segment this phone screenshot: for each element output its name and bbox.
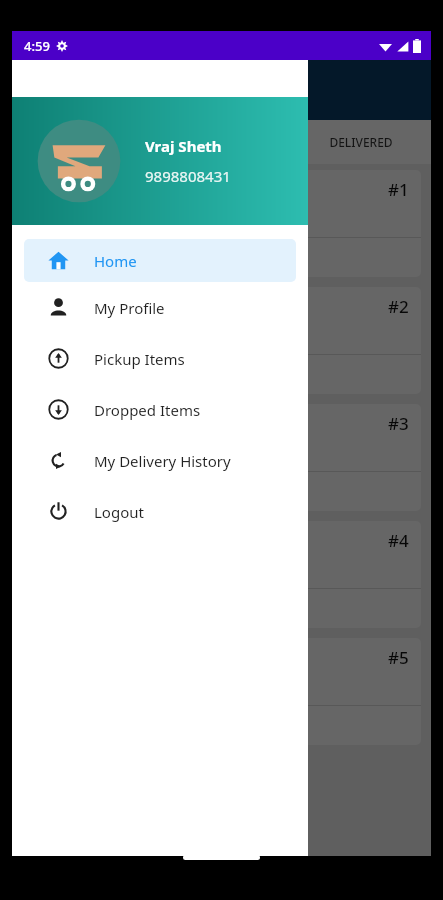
staticText: Vraj Sheth [145, 136, 222, 156]
staticText: Call Customer [34, 365, 128, 384]
button[interactable]: DELIVERED [291, 120, 431, 164]
button[interactable]: My Delivery History [12, 435, 308, 486]
staticText: Logout [94, 502, 144, 522]
button[interactable]: Logout [12, 486, 308, 537]
button[interactable]: PICKED [151, 120, 291, 164]
staticText: 4:59 [24, 37, 50, 55]
staticText: My Profile [94, 298, 165, 318]
button[interactable]: Order [22, 521, 421, 628]
staticText: #1 [388, 178, 409, 201]
staticText: Orders [70, 77, 133, 103]
button[interactable]: Order [22, 170, 421, 277]
button[interactable]: PENDING [12, 120, 151, 164]
staticText: #2 [388, 295, 409, 318]
staticText: Order [34, 295, 70, 313]
staticText: DELIVERED [329, 134, 393, 150]
button[interactable]: Home [24, 239, 296, 282]
staticText: #5 [388, 646, 409, 669]
button[interactable]: Open navigation menu [12, 60, 431, 120]
staticText: Dropped Items [94, 400, 201, 420]
staticText: 9898808431 [145, 166, 231, 186]
staticText: Order [34, 178, 70, 196]
staticText: Home [94, 251, 137, 271]
staticText: Order [34, 412, 70, 430]
button[interactable]: Vraj Sheth [12, 97, 308, 225]
button[interactable]: My Profile [12, 282, 308, 333]
staticText: My Delivery History [94, 451, 231, 471]
button[interactable]: Order [22, 287, 421, 394]
staticText: Pickup Items [94, 349, 185, 369]
button[interactable]: Order [22, 638, 421, 745]
staticText: Call Customer [34, 248, 128, 267]
staticText: 12, Raj Path, Gotri Rasta [34, 209, 181, 227]
button[interactable]: Dropped Items [12, 384, 308, 435]
staticText: 55 Sun Complex, Gotri [34, 443, 170, 461]
staticText: PENDING [54, 134, 109, 150]
staticText: #3 [388, 412, 409, 435]
staticText: #4 [388, 529, 409, 552]
other: Open navigation menu [28, 79, 50, 101]
staticText: PICKED [200, 134, 243, 150]
button[interactable]: Order [22, 404, 421, 511]
button[interactable]: Pickup Items [12, 333, 308, 384]
